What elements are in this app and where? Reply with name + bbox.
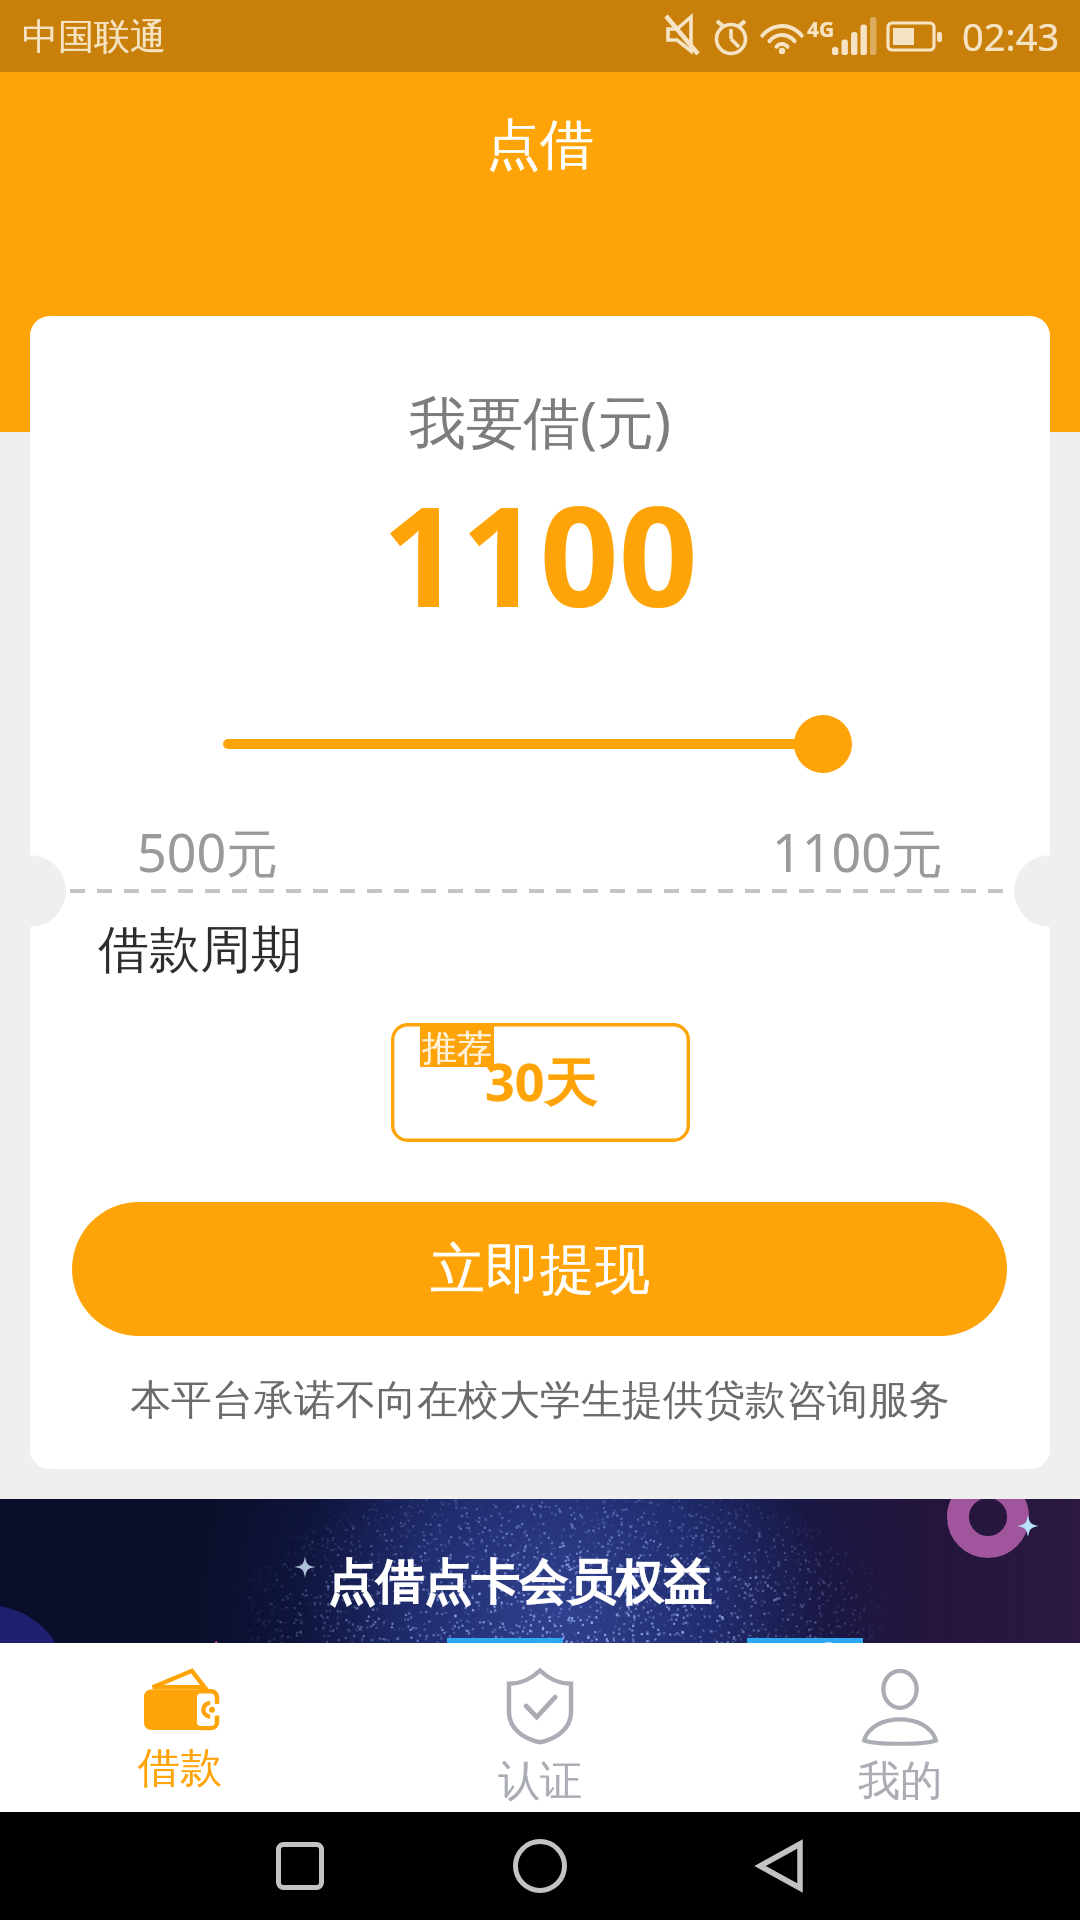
staticText: 点借 — [486, 111, 594, 179]
staticText: 借款周期 — [98, 918, 302, 982]
button[interactable]: Loan amount slider — [30, 709, 1050, 779]
staticText: 本平台承诺不向在校大学生提供贷款咨询服务 — [130, 1375, 950, 1427]
staticText: 4G — [807, 15, 835, 44]
button[interactable]: 立即提现 — [72, 1202, 1007, 1336]
button[interactable]: Back — [726, 1812, 834, 1920]
staticText: 中国联通 — [22, 14, 166, 59]
staticText: 认证 — [498, 1755, 582, 1808]
button[interactable]: 我的 — [720, 1643, 1080, 1812]
staticText: 1100元 — [772, 816, 943, 887]
staticText: 500元 — [137, 816, 279, 887]
staticText: 1100 — [382, 459, 698, 647]
button[interactable]: 借款 — [0, 1643, 360, 1812]
staticText: 30天 — [485, 1045, 597, 1116]
button[interactable]: 推荐 — [391, 1023, 690, 1142]
staticText: 我的 — [858, 1755, 942, 1808]
button[interactable]: Recents — [246, 1812, 354, 1920]
staticText: 推荐 — [422, 1026, 492, 1067]
staticText: 月卡 — [755, 1638, 855, 1643]
staticText: 借款 — [138, 1742, 222, 1795]
staticText: 领会员 — [563, 1634, 747, 1643]
staticText: 点借点卡会员权益 — [327, 1553, 711, 1613]
staticText: 02:43 — [962, 10, 1060, 62]
staticText: 我要借(元) — [409, 382, 672, 460]
staticText: 新critical — [200, 1631, 447, 1643]
button[interactable]: 认证 — [360, 1643, 720, 1812]
button[interactable]: 点借点卡会员权益 — [0, 1499, 1080, 1643]
button[interactable]: Home — [486, 1812, 594, 1920]
staticText: 立即提现 — [430, 1235, 650, 1304]
